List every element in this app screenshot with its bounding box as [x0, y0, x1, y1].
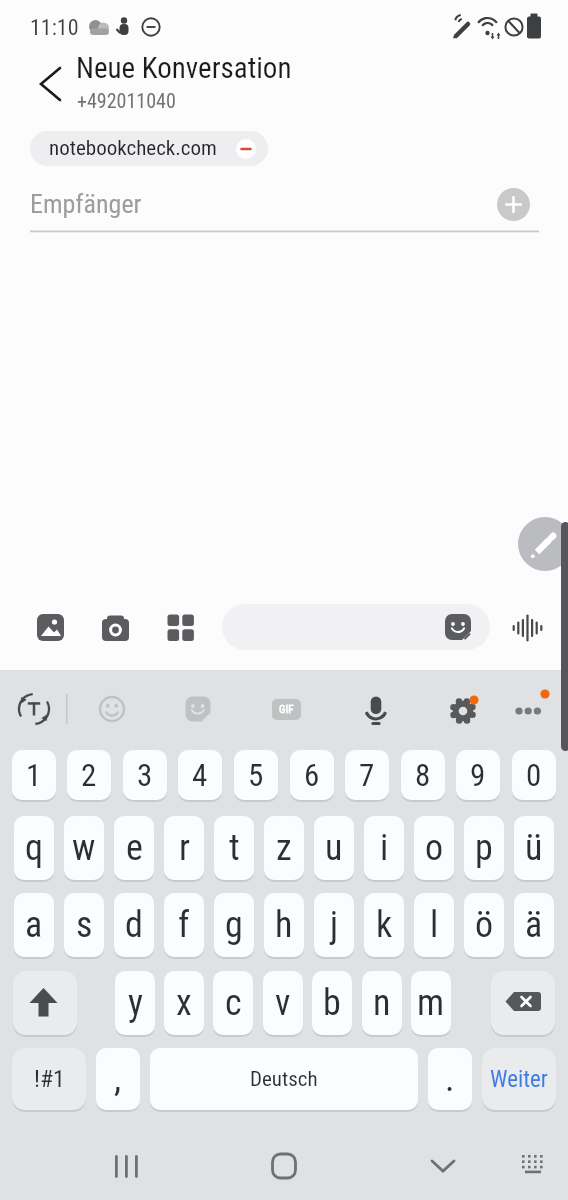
button[interactable] [441, 687, 485, 731]
button[interactable] [160, 607, 201, 648]
button[interactable]: !#1 [12, 1048, 86, 1110]
button[interactable]: 8 [401, 750, 445, 800]
staticText: +492011040 [77, 89, 176, 112]
button[interactable]: p [464, 816, 504, 880]
button[interactable]: h [264, 893, 304, 957]
button[interactable]: GIF [264, 687, 308, 731]
button[interactable]: 1 [12, 750, 56, 800]
button[interactable]: z [264, 816, 304, 880]
button[interactable]: x [164, 971, 204, 1035]
button[interactable] [176, 687, 220, 731]
button[interactable] [90, 687, 134, 731]
staticText: z [276, 827, 292, 869]
button[interactable]: ü [514, 816, 554, 880]
button[interactable]: ä [514, 893, 554, 957]
button[interactable]: 2 [67, 750, 111, 800]
button[interactable]: 5 [234, 750, 278, 800]
button[interactable] [507, 607, 548, 648]
button[interactable]: i [364, 816, 404, 880]
button[interactable]: k [364, 893, 404, 957]
button[interactable]: l [414, 893, 454, 957]
button[interactable]: y [115, 971, 155, 1035]
button[interactable]: Weiter [482, 1048, 556, 1110]
button[interactable] [419, 1142, 467, 1190]
staticText: f [178, 904, 190, 946]
button[interactable]: c [213, 971, 253, 1035]
button[interactable]: ö [464, 893, 504, 957]
staticText: q [25, 827, 44, 869]
staticText: w [72, 827, 96, 869]
button[interactable]: v [263, 971, 303, 1035]
button[interactable]: , [96, 1048, 140, 1110]
staticText: GIF [279, 703, 294, 716]
button[interactable]: m [411, 971, 451, 1035]
button[interactable] [354, 687, 398, 731]
button[interactable]: 4 [178, 750, 222, 800]
staticText: y [128, 982, 143, 1024]
staticText: h [275, 904, 293, 946]
button[interactable]: 3 [123, 750, 167, 800]
staticText: b [323, 982, 341, 1024]
button[interactable] [96, 1142, 144, 1190]
button[interactable]: o [414, 816, 454, 880]
staticText: ä [525, 904, 543, 946]
button[interactable]: notebookcheck.com [30, 131, 268, 166]
button[interactable]: s [64, 893, 104, 957]
button[interactable]: 0 [512, 750, 556, 800]
button[interactable]: Deutsch [150, 1048, 418, 1110]
staticText: 7 [359, 757, 375, 793]
staticText: 1 [26, 757, 42, 793]
button[interactable] [13, 687, 57, 731]
button[interactable] [491, 971, 555, 1035]
staticText: e [126, 827, 143, 869]
staticText: l [430, 904, 439, 946]
staticText: n [373, 982, 391, 1024]
button[interactable]: q [14, 816, 54, 880]
button[interactable]: b [312, 971, 352, 1035]
staticText: p [475, 827, 493, 869]
staticText: Neue Konversation [76, 51, 292, 85]
button[interactable]: n [362, 971, 402, 1035]
button[interactable]: 7 [345, 750, 389, 800]
button[interactable] [497, 188, 530, 221]
button[interactable] [28, 64, 64, 100]
button[interactable]: 9 [456, 750, 500, 800]
staticText: k [376, 904, 393, 946]
button[interactable] [30, 607, 71, 648]
staticText: r [179, 827, 190, 869]
staticText: !#1 [34, 1065, 65, 1093]
staticText: , [114, 1058, 122, 1100]
staticText: o [425, 827, 444, 869]
button[interactable]: t [214, 816, 254, 880]
staticText: 6 [304, 757, 320, 793]
button[interactable]: . [428, 1048, 472, 1110]
button[interactable]: w [64, 816, 104, 880]
button[interactable] [518, 517, 568, 571]
staticText: i [380, 827, 389, 869]
button[interactable]: g [214, 893, 254, 957]
button[interactable]: f [164, 893, 204, 957]
button[interactable] [13, 971, 77, 1035]
staticText: 3 [137, 757, 153, 793]
staticText: x [176, 982, 192, 1024]
staticText: 8 [415, 757, 431, 793]
button[interactable] [509, 1142, 557, 1190]
staticText: notebookcheck.com [49, 136, 217, 161]
staticText: g [225, 904, 243, 946]
button[interactable] [95, 607, 136, 648]
staticText: 2 [81, 757, 97, 793]
button[interactable]: u [314, 816, 354, 880]
button[interactable] [506, 687, 554, 735]
staticText: 4 [192, 757, 208, 793]
button[interactable]: 6 [290, 750, 334, 800]
staticText: m [417, 982, 445, 1024]
staticText: u [325, 827, 343, 869]
button[interactable]: e [114, 816, 154, 880]
button[interactable]: a [14, 893, 54, 957]
button[interactable]: j [314, 893, 354, 957]
button[interactable] [260, 1142, 308, 1190]
button[interactable] [222, 604, 490, 650]
button[interactable]: r [164, 816, 204, 880]
staticText: d [125, 904, 143, 946]
button[interactable]: d [114, 893, 154, 957]
